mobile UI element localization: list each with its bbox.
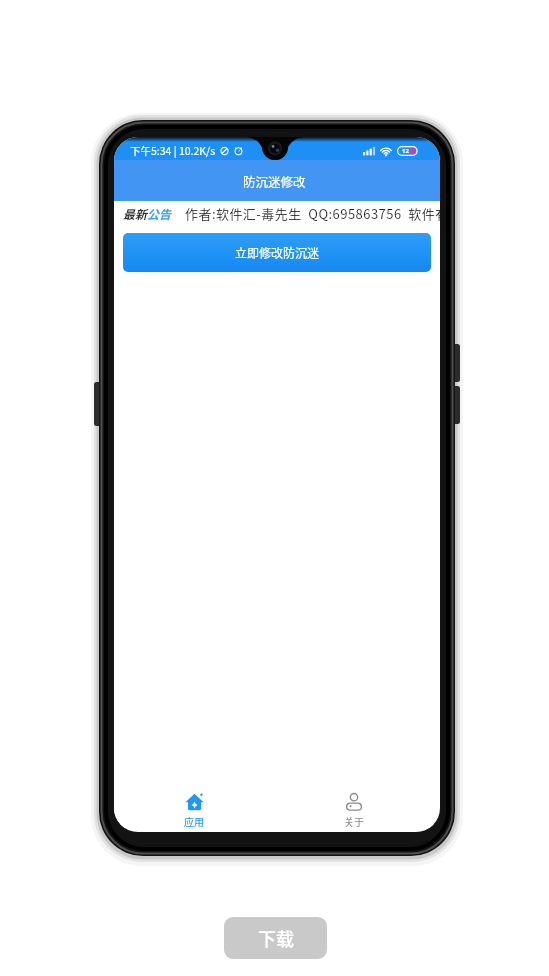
staticText: 12 bbox=[402, 147, 409, 155]
button[interactable]: 下载 bbox=[224, 917, 327, 959]
staticText: 应用 bbox=[184, 814, 204, 828]
staticText: 关于 bbox=[344, 814, 364, 828]
staticText: 最新公告 bbox=[123, 205, 172, 222]
staticText: 作者:软件汇-毒先生 QQ:695863756 软件有任何问题联系 bbox=[185, 204, 440, 223]
button[interactable]: 关于 bbox=[274, 790, 434, 828]
staticText: 下载 bbox=[258, 925, 294, 951]
staticText: 下午5:34 | 10.2K/s bbox=[130, 143, 216, 158]
staticText: 立即修改防沉迷 bbox=[235, 244, 320, 261]
button[interactable]: 应用 bbox=[114, 790, 274, 828]
staticText: 防沉迷修改 bbox=[243, 172, 306, 190]
button[interactable]: 立即修改防沉迷 bbox=[123, 233, 431, 272]
